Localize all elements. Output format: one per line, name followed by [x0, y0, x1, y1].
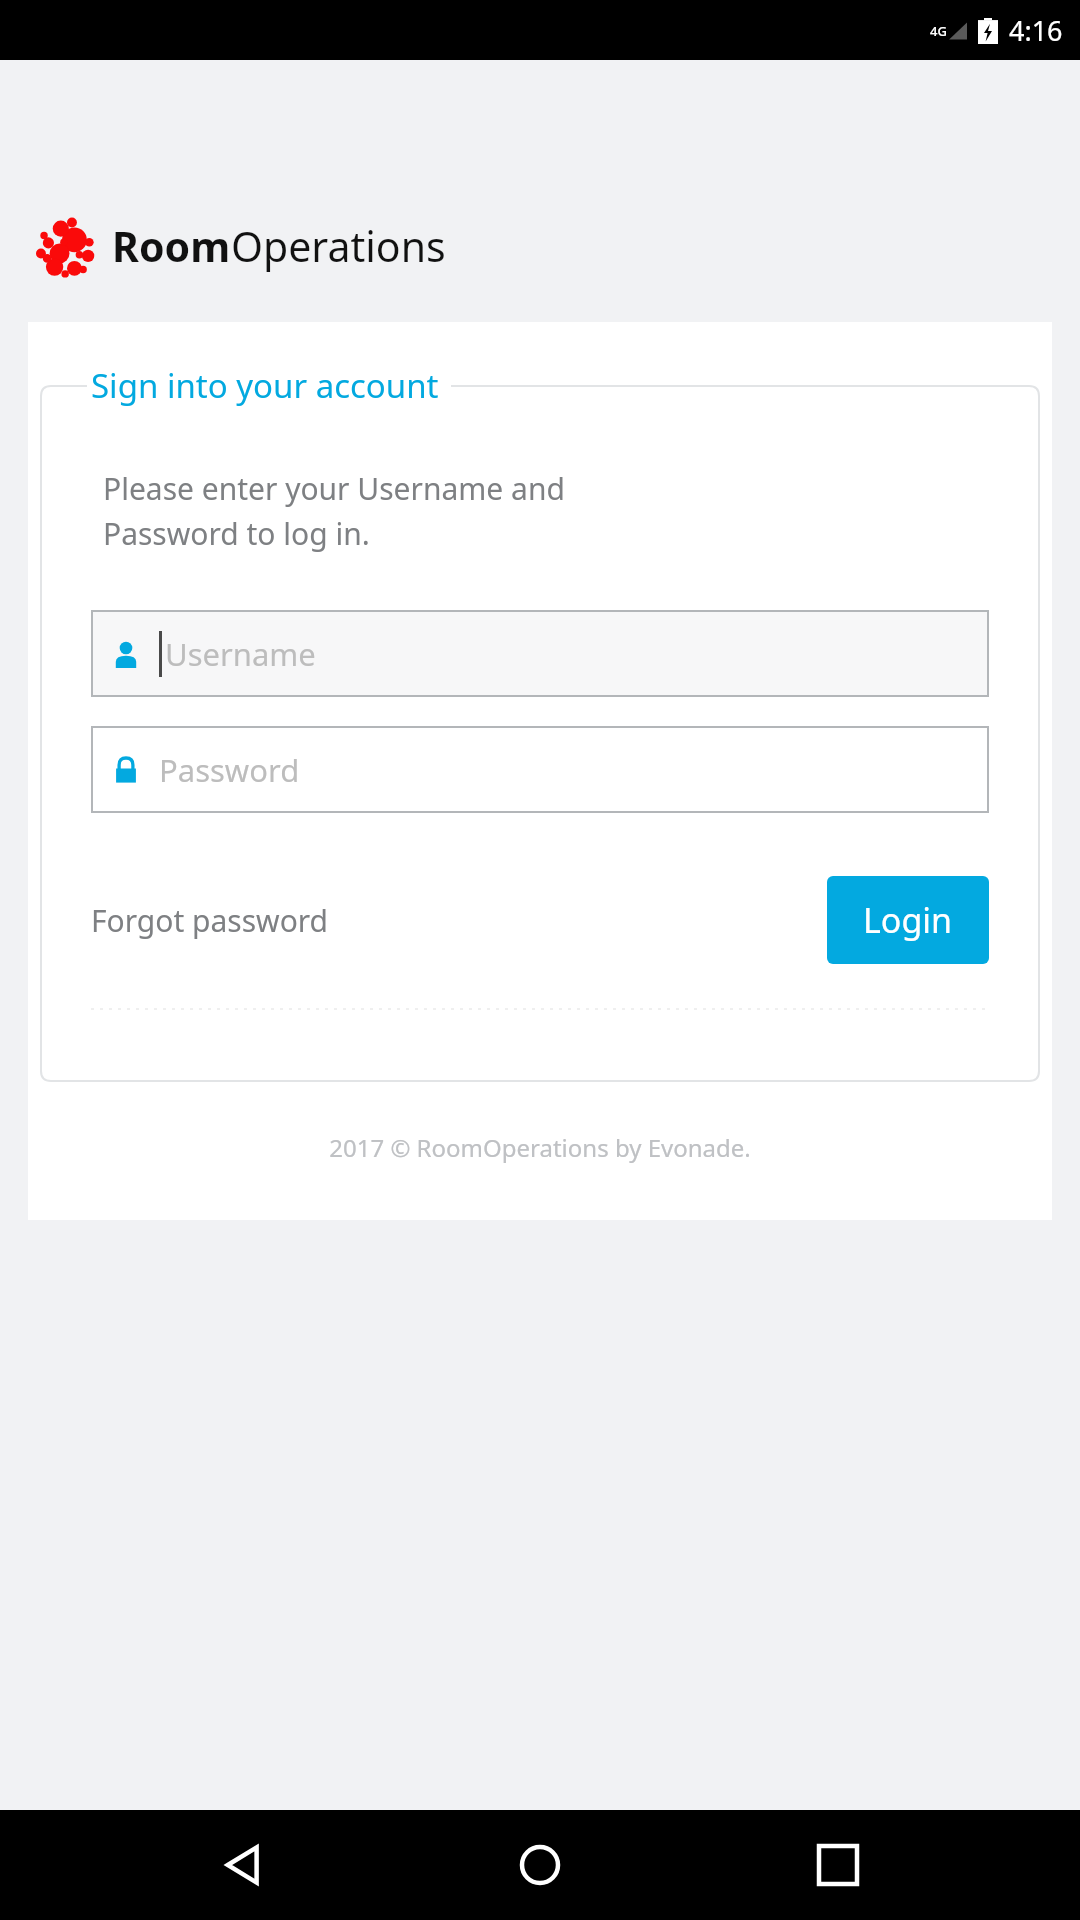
staticText: Sign into your account	[91, 363, 439, 408]
button[interactable]: Login	[827, 876, 989, 964]
staticText: Forgot password	[91, 900, 329, 941]
button[interactable]: Back	[188, 1810, 298, 1920]
staticText: 4:16	[1009, 12, 1063, 49]
button[interactable]: Password	[91, 726, 989, 813]
staticText: Password	[159, 749, 300, 791]
staticText: Login	[863, 897, 953, 943]
staticText: Operations	[231, 218, 446, 274]
button[interactable]: Username	[91, 610, 989, 697]
staticText: Room	[112, 218, 231, 274]
button[interactable]: Home	[485, 1810, 595, 1920]
button[interactable]: Forgot password	[91, 892, 329, 949]
staticText: 2017 © RoomOperations by Evonade.	[28, 1131, 1052, 1164]
staticText: 4G	[930, 22, 947, 40]
button[interactable]: Recent apps	[783, 1810, 893, 1920]
staticText: Username	[165, 633, 316, 675]
staticText: Please enter your Username and Password …	[103, 468, 565, 553]
